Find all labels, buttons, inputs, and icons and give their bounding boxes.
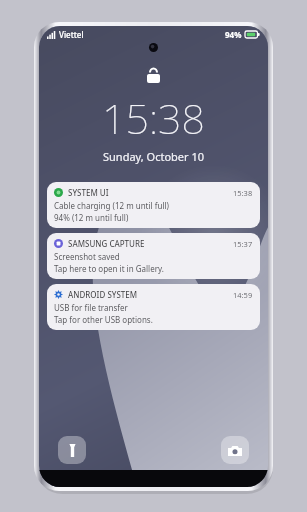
button[interactable]: ANDROID SYSTEM	[47, 284, 260, 330]
staticText: SYSTEM UI	[68, 187, 109, 198]
staticText: ANDROID SYSTEM	[68, 289, 138, 300]
staticText: 15:37	[233, 239, 253, 249]
staticText: USB for file transfer	[54, 302, 128, 313]
staticText: 14:59	[233, 290, 253, 300]
staticText: Tap for other USB options.	[54, 314, 153, 325]
staticText: 94%	[225, 29, 242, 40]
staticText: Screenshot saved	[54, 251, 120, 262]
staticText: Sunday, October 10	[39, 149, 268, 164]
staticText: Tap here to open it in Gallery.	[54, 263, 164, 274]
button[interactable]: SAMSUNG CAPTURE	[47, 233, 260, 279]
button[interactable]: Camera	[221, 436, 249, 464]
staticText: SAMSUNG CAPTURE	[68, 238, 145, 249]
button[interactable]: Flashlight	[58, 436, 86, 464]
staticText: Viettel	[59, 29, 84, 40]
button[interactable]: SYSTEM UI	[47, 182, 260, 228]
staticText: 15:38	[233, 188, 253, 198]
staticText: 94% (12 m until full)	[54, 212, 129, 223]
staticText: 15:38	[39, 90, 268, 146]
staticText: Cable charging (12 m until full)	[54, 200, 169, 211]
